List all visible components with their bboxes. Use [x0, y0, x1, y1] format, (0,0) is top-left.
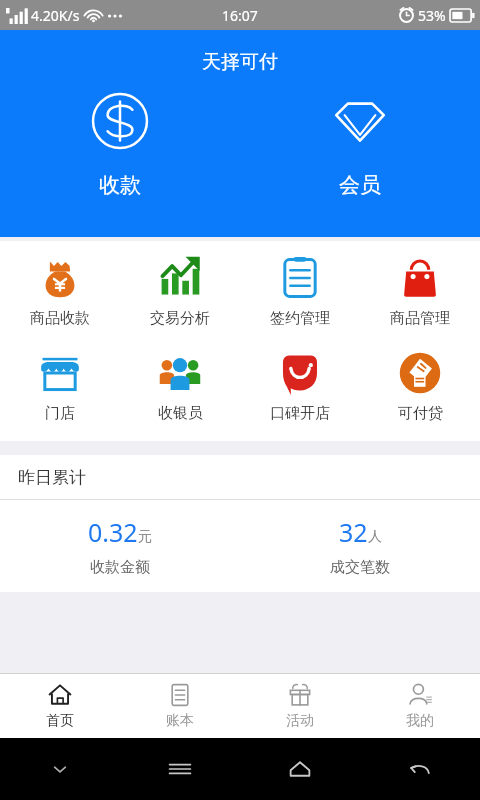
button[interactable]: 账本: [120, 674, 240, 738]
staticText: 收银员: [158, 404, 203, 423]
button[interactable]: 商品管理: [360, 247, 480, 336]
button[interactable]: 签约管理: [240, 247, 360, 336]
staticText: 32: [339, 515, 368, 549]
other: Collapse: [51, 760, 69, 778]
other: Menu: [167, 756, 193, 782]
staticText: 活动: [286, 712, 314, 730]
button[interactable]: 门店: [0, 342, 120, 431]
staticText: 元: [138, 528, 152, 546]
staticText: 昨日累计: [18, 467, 86, 488]
staticText: 53%: [418, 6, 446, 25]
staticText: 我的: [406, 712, 434, 730]
staticText: 交易分析: [150, 309, 210, 328]
button[interactable]: 活动: [240, 674, 360, 738]
other: Back: [407, 756, 433, 782]
staticText: 0.32: [88, 515, 138, 549]
staticText: 账本: [166, 712, 194, 730]
staticText: 收款: [99, 172, 141, 198]
button[interactable]: 收款: [0, 30, 240, 237]
staticText: 首页: [46, 712, 74, 730]
button[interactable]: 32: [240, 500, 480, 592]
button[interactable]: 0.32: [0, 500, 240, 592]
staticText: 4.20K/s: [31, 6, 80, 25]
staticText: 会员: [339, 172, 381, 198]
button[interactable]: 口碑开店: [240, 342, 360, 431]
staticText: 人: [368, 528, 382, 546]
button[interactable]: 收银员: [120, 342, 240, 431]
staticText: 收款金额: [90, 558, 150, 577]
button[interactable]: 首页: [0, 674, 120, 738]
staticText: 成交笔数: [330, 558, 390, 577]
staticText: 商品收款: [30, 309, 90, 328]
button[interactable]: 会员: [240, 30, 480, 237]
staticText: 天择可付: [202, 50, 278, 74]
button[interactable]: 可付贷: [360, 342, 480, 431]
button[interactable]: 交易分析: [120, 247, 240, 336]
button[interactable]: 我的: [360, 674, 480, 738]
staticText: 16:07: [222, 6, 258, 25]
staticText: 可付贷: [398, 404, 443, 423]
button[interactable]: 商品收款: [0, 247, 120, 336]
other: Home: [287, 756, 313, 782]
staticText: 商品管理: [390, 309, 450, 328]
staticText: 门店: [45, 404, 75, 423]
staticText: 口碑开店: [270, 404, 330, 423]
staticText: 签约管理: [270, 309, 330, 328]
